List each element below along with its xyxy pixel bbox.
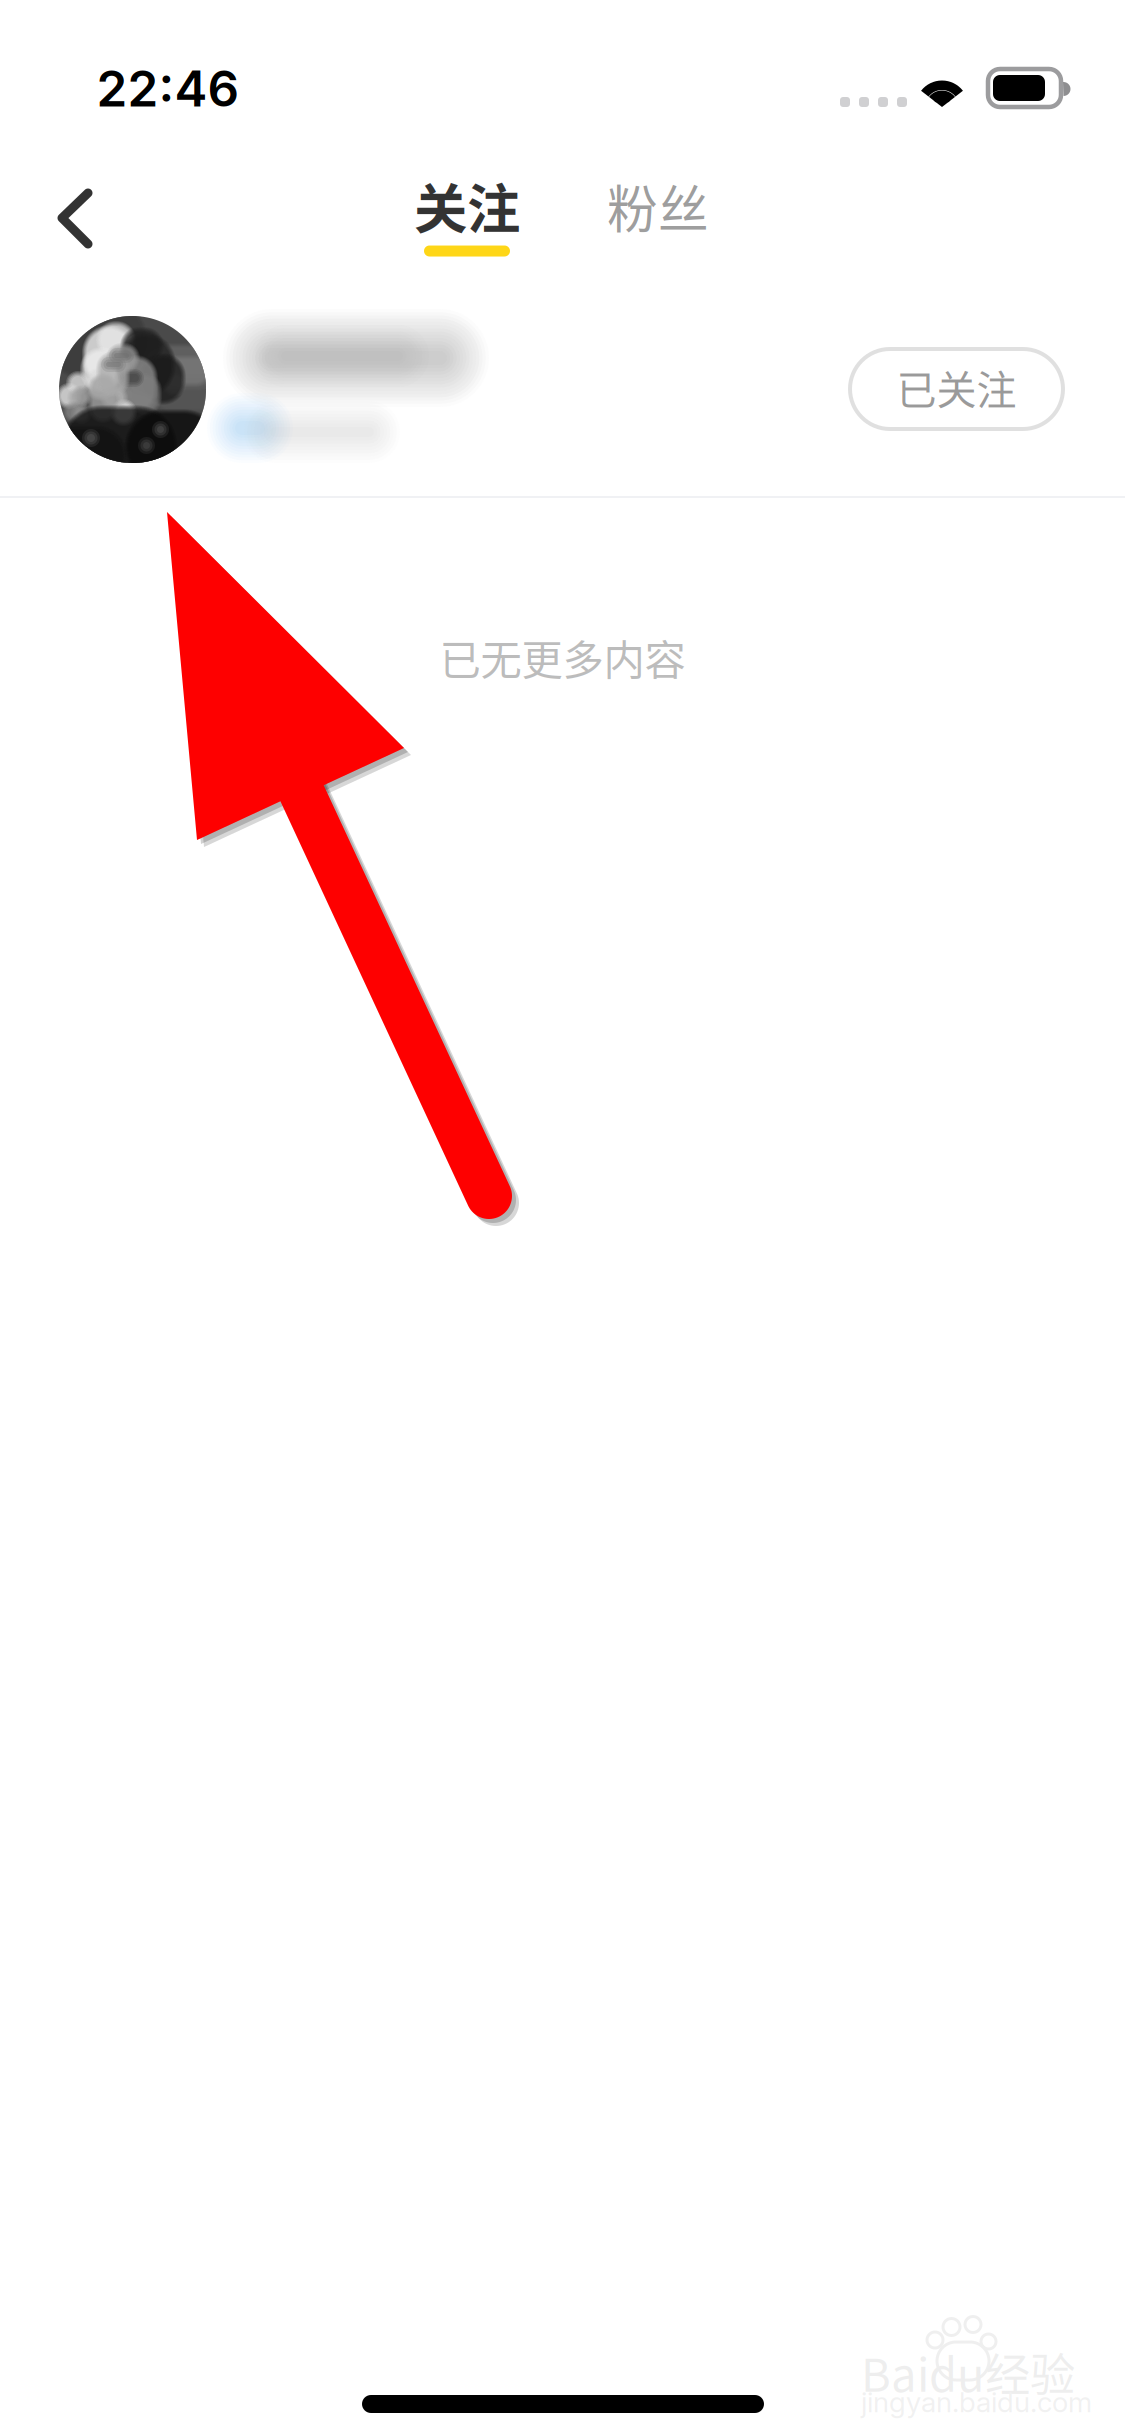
staticText: 已无更多内容 bbox=[439, 627, 685, 687]
staticText: 粉丝 bbox=[607, 169, 709, 243]
staticText: Baidu经验 bbox=[861, 2339, 1075, 2405]
button[interactable]: 关注 bbox=[377, 152, 557, 302]
button[interactable]: 粉丝 bbox=[573, 151, 743, 261]
staticText: 22:46 bbox=[96, 59, 239, 118]
staticText: 关注 bbox=[414, 167, 520, 244]
staticText: jingyan.baidu.com bbox=[861, 2385, 1092, 2419]
button[interactable] bbox=[0, 298, 1125, 496]
button[interactable]: 已关注 bbox=[850, 349, 1063, 429]
button[interactable]: 返回 bbox=[0, 0, 104, 104]
staticText: 已关注 bbox=[896, 358, 1016, 416]
